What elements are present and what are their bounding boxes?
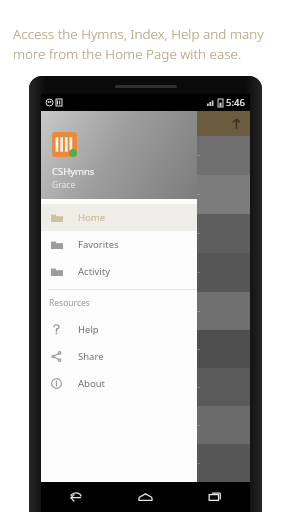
- button[interactable]: Share: [41, 343, 197, 370]
- staticText: Help: [78, 323, 99, 336]
- staticText: Resources: [49, 297, 90, 309]
- button[interactable]: Home: [41, 204, 197, 231]
- button[interactable]: Back: [41, 482, 110, 512]
- button[interactable]: Favorites: [41, 231, 197, 258]
- staticText: Activity: [78, 265, 111, 278]
- staticText: Grace: [52, 179, 76, 191]
- staticText: Favorites: [78, 238, 119, 251]
- button[interactable]: About: [41, 370, 197, 397]
- staticText: Access the Hymns, Index, Help and many m…: [13, 25, 276, 63]
- staticText: Share: [78, 350, 104, 363]
- button[interactable]: Recents: [180, 482, 250, 512]
- button[interactable]: Home: [110, 482, 180, 512]
- staticText: Home: [78, 211, 106, 224]
- button[interactable]: Help: [41, 316, 197, 343]
- staticText: About: [78, 377, 105, 390]
- staticText: 5:46: [226, 96, 245, 109]
- staticText: CSHymns: [52, 165, 95, 178]
- button[interactable]: Activity: [41, 258, 197, 285]
